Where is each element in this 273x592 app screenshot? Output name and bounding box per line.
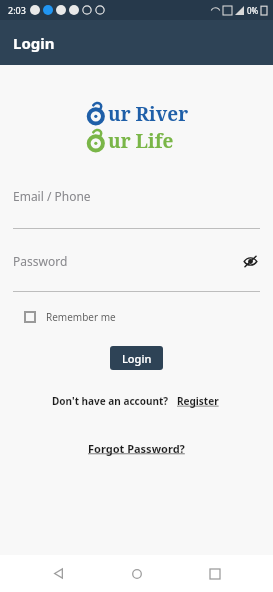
staticText: Password <box>13 253 240 269</box>
staticText: ur Life <box>108 128 174 154</box>
button[interactable]: Show password <box>240 251 260 271</box>
staticText: Email / Phone <box>13 188 260 204</box>
button[interactable]: Password <box>13 249 260 273</box>
button[interactable]: Home <box>117 555 157 592</box>
button[interactable]: Email / Phone <box>13 186 260 206</box>
button[interactable]: Login <box>110 346 163 370</box>
staticText: Login <box>122 351 152 366</box>
staticText: Remember me <box>46 310 116 324</box>
staticText: 0% <box>247 5 259 16</box>
staticText: Login <box>13 33 55 53</box>
staticText: ur River <box>108 101 189 127</box>
button[interactable]: Register <box>175 392 221 410</box>
staticText: Don't have an account? <box>52 394 169 408</box>
button[interactable]: Remember me <box>22 306 118 328</box>
button[interactable]: Forgot Password? <box>82 438 191 459</box>
button[interactable]: Recent apps <box>195 555 235 592</box>
button[interactable]: Back <box>38 555 78 592</box>
staticText: 2:03 <box>8 4 26 16</box>
